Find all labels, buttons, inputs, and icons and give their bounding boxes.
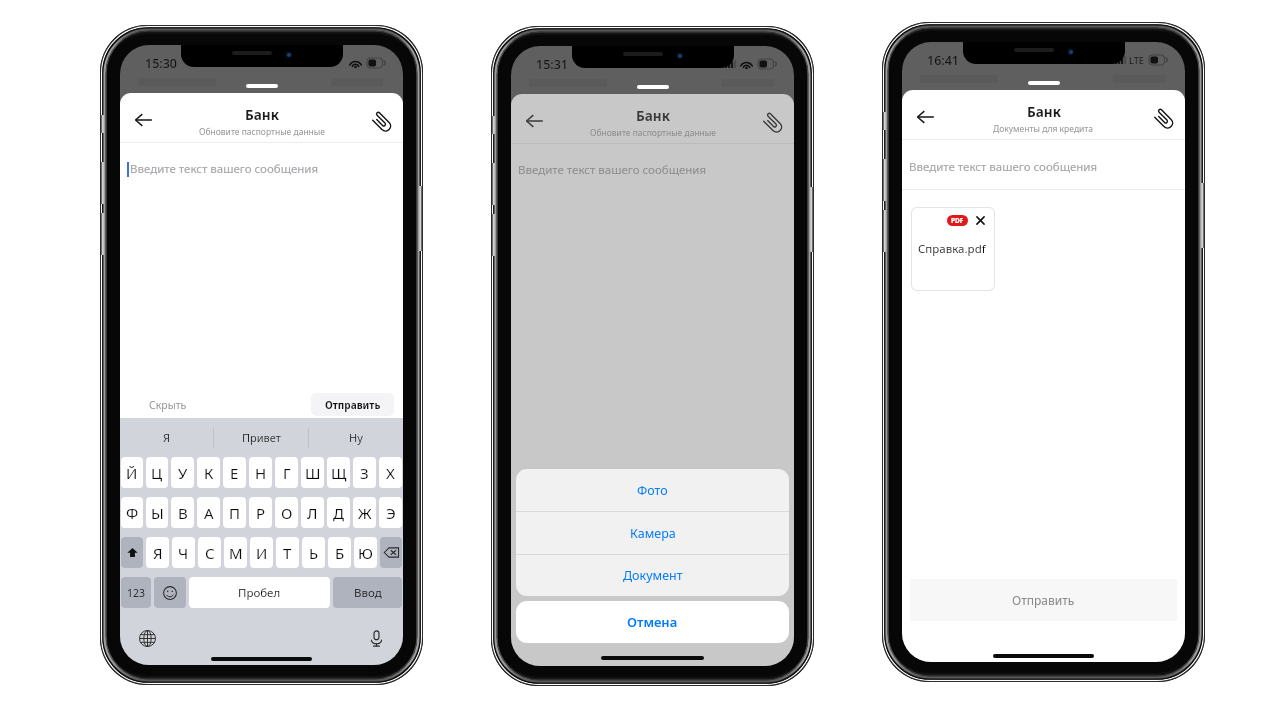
staticText: Т (283, 543, 292, 563)
staticText: Введите текст вашего сообщения (130, 161, 319, 177)
button[interactable]: Ш (301, 457, 324, 488)
button[interactable]: Ю (354, 537, 377, 568)
button[interactable]: Привет (214, 418, 308, 457)
staticText: Введите текст вашего сообщения (909, 159, 1098, 175)
staticText: 15:31 (536, 56, 569, 73)
button[interactable]: Ф (121, 497, 143, 528)
staticText: Ф (126, 503, 139, 523)
staticText: Я (153, 543, 163, 563)
button[interactable]: Назад (910, 102, 940, 132)
button[interactable]: Отмена (516, 601, 789, 643)
button[interactable]: Я (120, 418, 213, 457)
button[interactable]: Отправить (311, 393, 394, 416)
button[interactable]: Е (223, 457, 246, 488)
button[interactable]: Камера (516, 512, 789, 554)
button[interactable]: Фото (516, 469, 789, 511)
staticText: Ю (358, 543, 373, 563)
staticText: Документы для кредита (993, 123, 1094, 135)
button[interactable]: Диктовка (365, 627, 387, 649)
button[interactable]: В (171, 497, 194, 528)
staticText: Введите текст вашего сообщения (518, 162, 707, 178)
staticText: Ь (309, 543, 319, 563)
button[interactable]: Т (276, 537, 299, 568)
staticText: 16:41 (927, 52, 960, 69)
button[interactable]: Пробел (189, 577, 330, 608)
staticText: Отмена (627, 613, 678, 631)
staticText: С (205, 543, 215, 563)
button[interactable]: Я (146, 537, 169, 568)
button[interactable]: Назад (128, 105, 158, 135)
staticText: PDF (951, 216, 964, 225)
staticText: Н (255, 463, 267, 483)
button[interactable]: Х (379, 457, 402, 488)
staticText: А (204, 503, 214, 523)
button[interactable]: Ц (146, 457, 168, 488)
staticText: И (256, 543, 268, 563)
button[interactable]: Н (249, 457, 272, 488)
staticText: Пробел (238, 585, 281, 601)
button[interactable]: Ввод (333, 577, 402, 608)
button[interactable]: Документ (516, 555, 789, 596)
staticText: Ну (349, 430, 363, 445)
button[interactable]: Э (379, 497, 402, 528)
staticText: Ч (178, 543, 189, 563)
button[interactable]: К (197, 457, 220, 488)
button[interactable]: Г (275, 457, 298, 488)
staticText: Д (333, 503, 344, 523)
staticText: Ц (151, 463, 163, 483)
button[interactable]: Ж (353, 497, 376, 528)
button[interactable]: Прикрепить файл (757, 107, 785, 135)
button[interactable]: У (171, 457, 194, 488)
staticText: 123 (127, 586, 146, 600)
staticText: Ввод (354, 585, 382, 601)
button[interactable]: Отправить (910, 579, 1177, 621)
button[interactable]: Эмодзи (154, 577, 186, 608)
staticText: Документ (623, 567, 683, 584)
staticText: Камера (630, 525, 676, 542)
button[interactable]: Прикрепить файл (1148, 103, 1176, 131)
staticText: Банк (1027, 103, 1061, 121)
staticText: 15:30 (145, 55, 178, 72)
staticText: П (229, 503, 240, 523)
staticText: Б (335, 543, 345, 563)
staticText: Ы (151, 503, 164, 523)
staticText: Я (163, 430, 171, 445)
button[interactable]: Ь (302, 537, 325, 568)
button[interactable]: О (275, 497, 298, 528)
button[interactable]: Щ (327, 457, 350, 488)
button[interactable]: Д (327, 497, 350, 528)
staticText: Р (256, 503, 266, 523)
button[interactable]: А (197, 497, 220, 528)
button[interactable]: 123 (121, 577, 151, 608)
button[interactable]: PDF (912, 208, 994, 290)
staticText: Обновите паспортные данные (199, 126, 325, 138)
button[interactable]: Р (249, 497, 272, 528)
staticText: Банк (245, 106, 279, 124)
staticText: Отправить (1012, 592, 1075, 608)
button[interactable]: Shift (121, 537, 143, 568)
button[interactable]: С (198, 537, 221, 568)
staticText: З (360, 463, 369, 483)
staticText: Банк (636, 107, 670, 125)
staticText: К (204, 463, 214, 483)
button[interactable]: И (250, 537, 273, 568)
button[interactable]: Прикрепить файл (366, 106, 394, 134)
button[interactable]: Удалить вложение (974, 214, 986, 226)
button[interactable]: Й (121, 457, 143, 488)
button[interactable]: Ну (309, 418, 403, 457)
button[interactable]: М (224, 537, 247, 568)
button[interactable]: Л (301, 497, 324, 528)
staticText: Привет (242, 430, 281, 445)
button[interactable]: Ы (146, 497, 168, 528)
button[interactable]: Ч (172, 537, 195, 568)
button[interactable]: П (223, 497, 246, 528)
staticText: Ж (358, 503, 372, 523)
staticText: Обновите паспортные данные (590, 127, 716, 139)
button[interactable]: Назад (519, 106, 549, 136)
button[interactable]: З (353, 457, 376, 488)
button[interactable]: Удалить (380, 537, 402, 568)
button[interactable]: Сменить язык (136, 627, 158, 649)
staticText: Г (283, 463, 291, 483)
button[interactable]: Скрыть (120, 393, 197, 417)
button[interactable]: Б (328, 537, 351, 568)
